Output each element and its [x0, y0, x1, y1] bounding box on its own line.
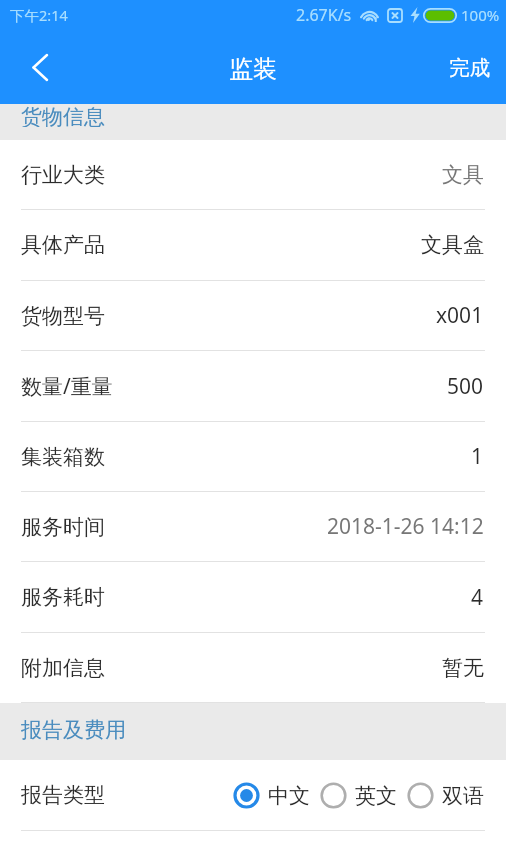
button[interactable]: 中文 — [233, 782, 310, 809]
staticText: 中文 — [268, 783, 310, 809]
staticText: 附加信息 — [21, 655, 105, 681]
staticText: 货物信息 — [21, 104, 105, 127]
staticText: 文具盒 — [421, 232, 484, 258]
staticText: 下午2:14 — [10, 5, 68, 25]
staticText: 英文 — [355, 783, 397, 809]
button[interactable]: 完成 — [433, 30, 506, 104]
staticText: 货物型号 — [21, 303, 105, 329]
button[interactable]: 双语 — [407, 782, 484, 809]
staticText: 双语 — [442, 783, 484, 809]
button[interactable]: 具体产品 — [0, 210, 506, 281]
staticText: 暂无 — [442, 655, 484, 681]
staticText: 100% — [461, 5, 500, 25]
button[interactable]: 服务时间 — [0, 492, 506, 562]
staticText: 2.67K/s — [296, 4, 352, 26]
staticText: 完成 — [449, 55, 490, 81]
staticText: 服务耗时 — [21, 584, 105, 610]
staticText: x001 — [436, 301, 484, 330]
button[interactable]: 服务耗时 — [0, 562, 506, 633]
staticText: 报告及费用 — [21, 717, 126, 743]
staticText: 报告类型 — [21, 782, 105, 808]
staticText: 1 — [471, 442, 484, 471]
staticText: 2018-1-26 14:12 — [327, 512, 484, 541]
staticText: 4 — [471, 583, 484, 612]
staticText: 监装 — [229, 54, 277, 84]
staticText: 集装箱数 — [21, 444, 105, 470]
staticText: 服务时间 — [21, 514, 105, 540]
button[interactable]: 英文 — [320, 782, 397, 809]
staticText: 数量/重量 — [21, 372, 113, 401]
button[interactable]: 货物型号 — [0, 281, 506, 351]
button[interactable]: 行业大类 — [0, 140, 506, 210]
button[interactable]: 报告类型 — [0, 760, 506, 831]
staticText: 500 — [447, 372, 484, 401]
staticText: 具体产品 — [21, 232, 105, 258]
button[interactable]: 数量/重量 — [0, 351, 506, 422]
button[interactable]: 附加信息 — [0, 633, 506, 703]
button[interactable]: Back — [0, 30, 62, 104]
button[interactable]: 集装箱数 — [0, 422, 506, 492]
staticText: 行业大类 — [21, 162, 105, 188]
staticText: 文具 — [442, 162, 484, 188]
